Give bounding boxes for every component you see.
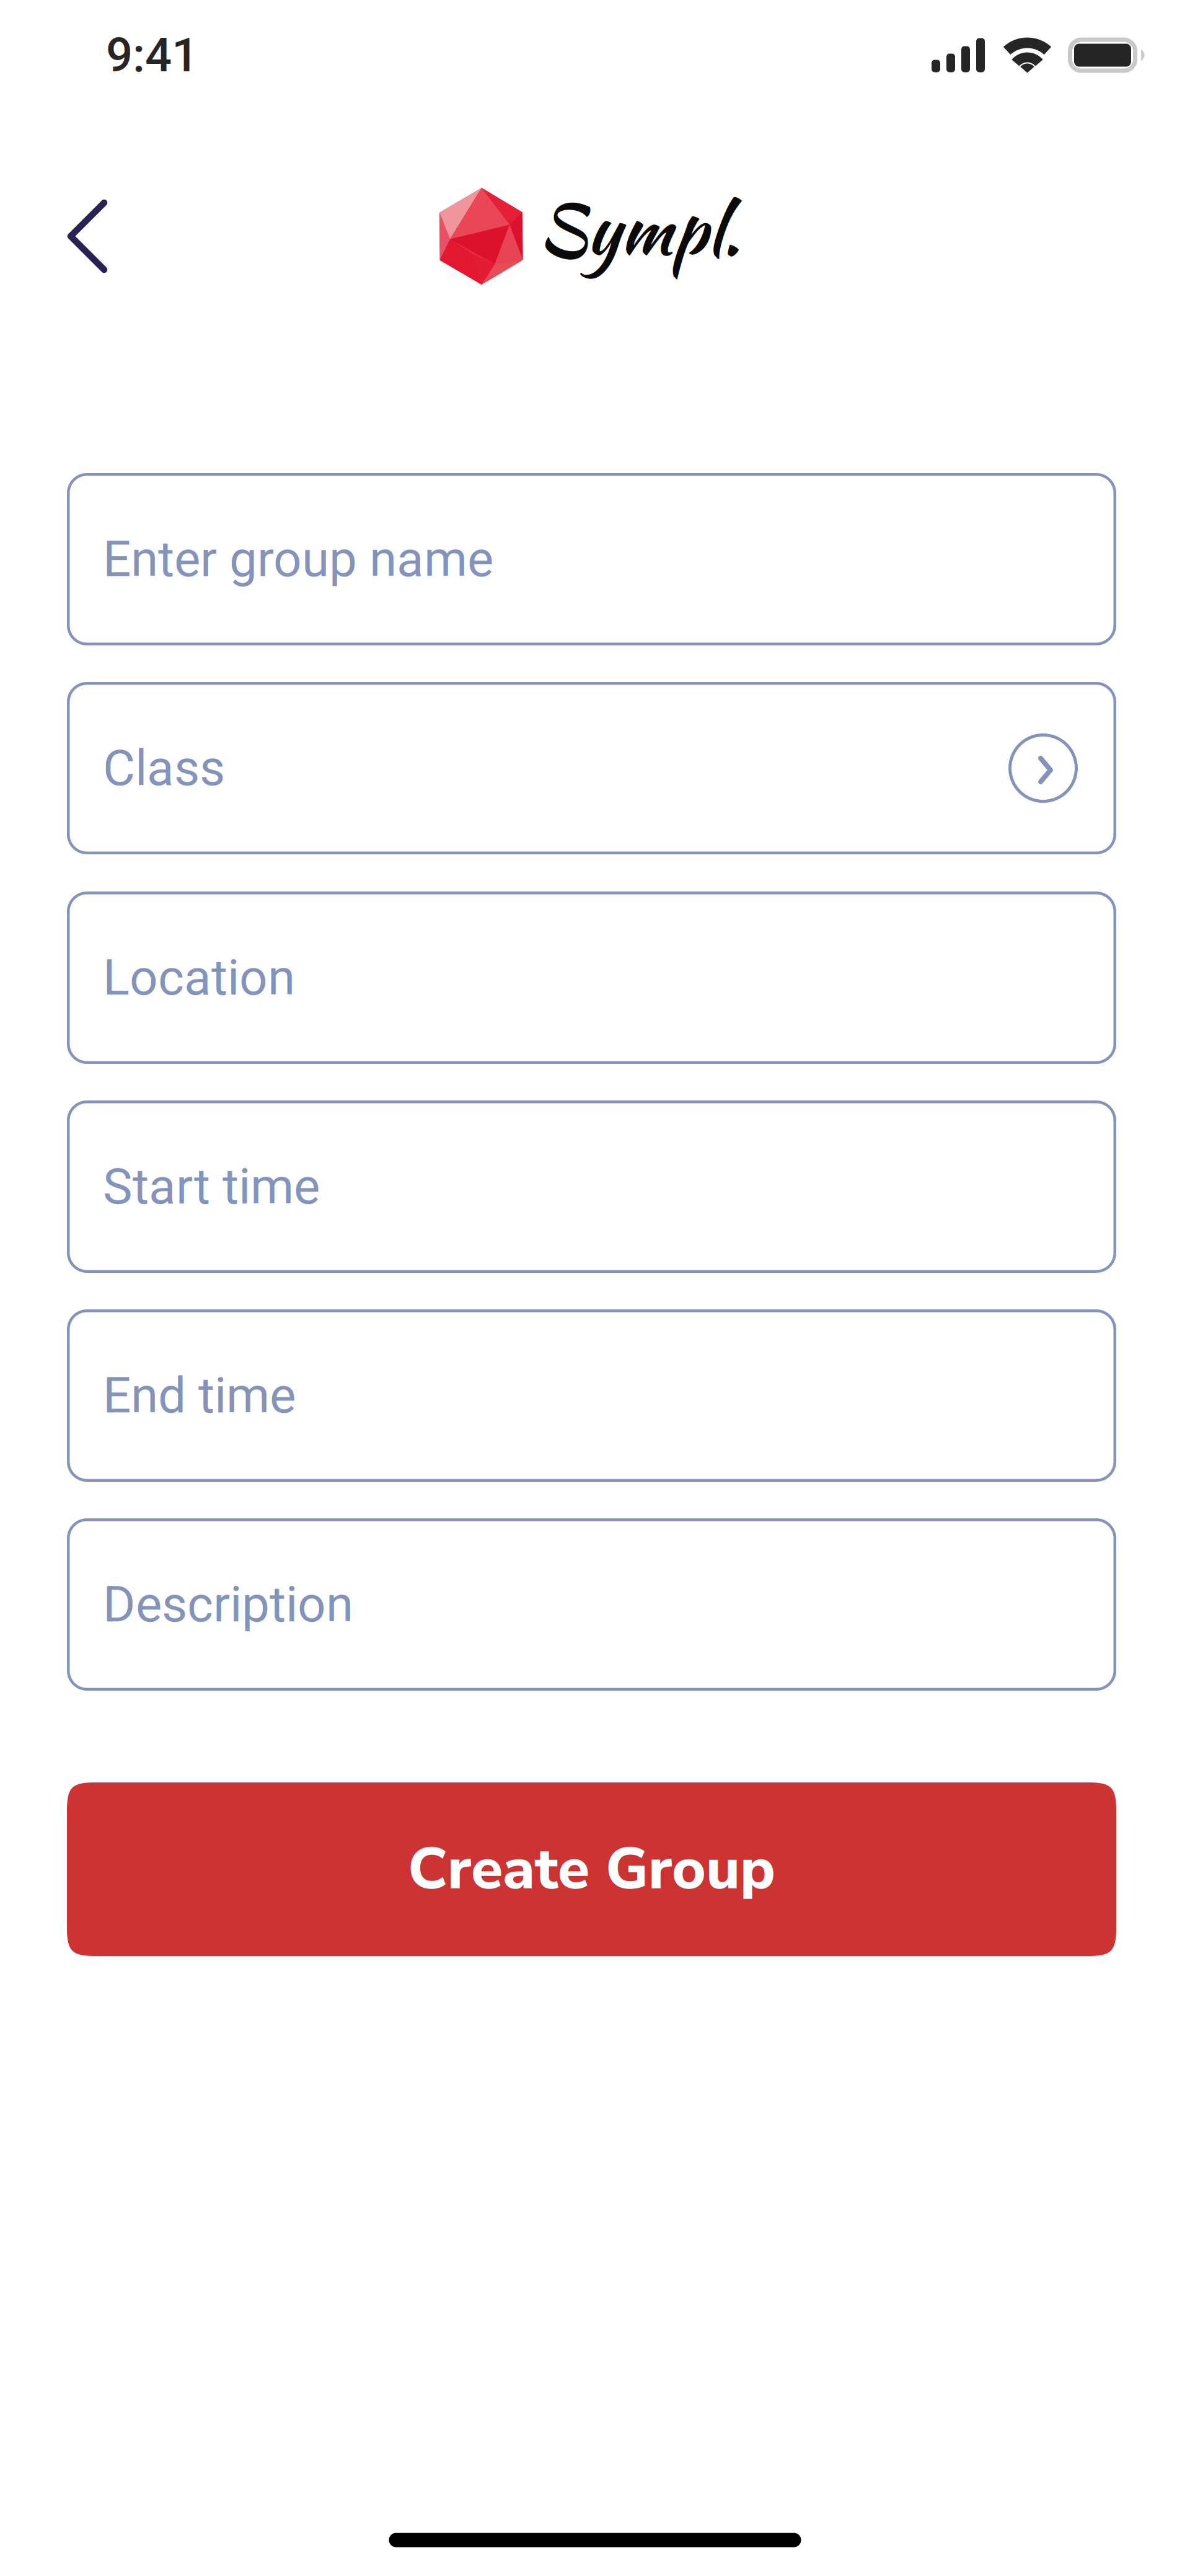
staticText: Start time — [103, 1158, 320, 1216]
button[interactable]: Create Group — [67, 1782, 1116, 1956]
staticText: Class — [103, 739, 225, 797]
staticText: Location — [103, 949, 295, 1007]
button[interactable]: Description — [67, 1518, 1116, 1691]
staticText: Sympl. — [538, 180, 740, 279]
staticText: Description — [103, 1575, 353, 1634]
staticText: 9:41 — [106, 28, 198, 83]
button[interactable]: Back — [35, 180, 140, 292]
button[interactable]: Enter group name — [67, 473, 1116, 645]
button[interactable]: Class — [67, 682, 1116, 854]
button[interactable]: End time — [67, 1309, 1116, 1482]
staticText: Create Group — [408, 1830, 775, 1909]
button[interactable]: Location — [67, 892, 1116, 1064]
staticText: Enter group name — [103, 530, 493, 588]
staticText: End time — [103, 1366, 296, 1425]
button[interactable]: Start time — [67, 1100, 1116, 1273]
